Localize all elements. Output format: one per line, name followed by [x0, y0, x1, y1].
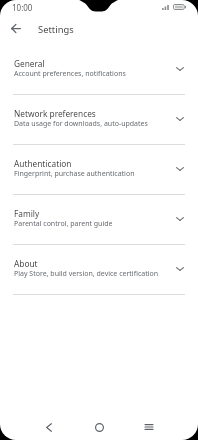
button[interactable]: Back — [4, 17, 27, 40]
button[interactable]: Expand — [172, 261, 188, 277]
staticText: Network preferences — [14, 108, 96, 119]
staticText: Data usage for downloads, auto-updates — [14, 119, 148, 129]
button[interactable]: About — [0, 245, 198, 294]
button[interactable]: Back — [35, 414, 63, 440]
staticText: Parental control, parent guide — [14, 219, 113, 229]
staticText: Settings — [38, 23, 74, 36]
button[interactable]: Recents — [135, 414, 163, 440]
button[interactable]: Family — [0, 195, 198, 244]
button[interactable]: Expand — [172, 61, 188, 77]
staticText: Family — [14, 208, 40, 219]
button[interactable]: Expand — [172, 111, 188, 127]
button[interactable]: Home — [85, 414, 113, 440]
staticText: Fingerprint, purchase authentication — [14, 169, 135, 179]
staticText: Authentication — [14, 158, 72, 169]
button[interactable]: Expand — [172, 211, 188, 227]
staticText: 10:00 — [12, 2, 33, 13]
staticText: About — [14, 258, 38, 269]
button[interactable]: Network preferences — [0, 95, 198, 144]
staticText: Play Store, build version, device certif… — [14, 269, 159, 279]
button[interactable]: Expand — [172, 161, 188, 177]
button[interactable]: Authentication — [0, 145, 198, 194]
button[interactable]: General — [0, 45, 198, 94]
staticText: Account preferences, notifications — [14, 69, 126, 79]
staticText: General — [14, 58, 45, 69]
